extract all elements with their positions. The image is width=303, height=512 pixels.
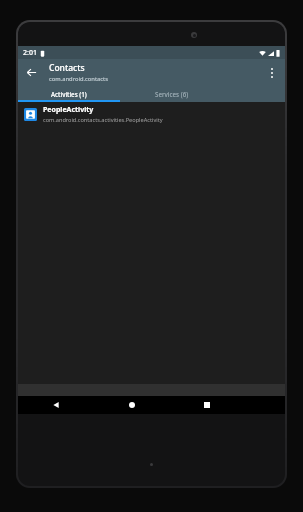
button[interactable]: PeopleActivity xyxy=(18,102,285,127)
button[interactable]: Home xyxy=(94,396,169,414)
staticText: Contacts xyxy=(49,62,85,74)
staticText: PeopleActivity xyxy=(43,105,94,115)
button[interactable]: Services (6) xyxy=(120,86,223,102)
button[interactable]: Back xyxy=(18,59,45,86)
button[interactable]: Activities (1) xyxy=(18,86,120,102)
button[interactable]: Recent apps xyxy=(169,396,244,414)
staticText: Services (6) xyxy=(155,90,189,98)
staticText: com.android.contacts.activities.PeopleAc… xyxy=(43,116,163,124)
staticText: com.android.contacts xyxy=(49,75,108,83)
button[interactable]: Back xyxy=(18,396,94,414)
staticText: 2:01 xyxy=(23,48,37,58)
button[interactable]: More options xyxy=(258,59,285,86)
staticText: Activities (1) xyxy=(51,90,87,98)
